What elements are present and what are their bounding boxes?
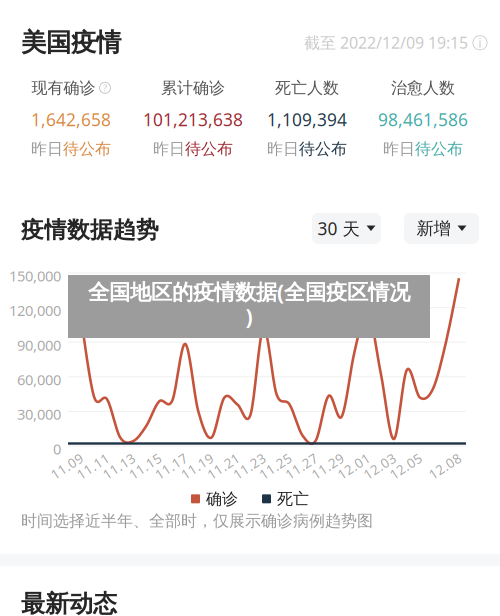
staticText: 待公布 [185, 139, 233, 159]
staticText: 疫情数据趋势 [21, 216, 159, 244]
staticText: 90,000 [17, 335, 61, 355]
staticText: 11.25 [258, 457, 294, 475]
staticText: ? [103, 82, 107, 94]
button[interactable]: 30 天 [312, 213, 381, 244]
staticText: 昨日 [153, 139, 185, 159]
staticText: 11.17 [153, 457, 189, 475]
staticText: 11.23 [231, 457, 267, 475]
staticText: 11.29 [310, 457, 346, 475]
staticText: 12.03 [362, 457, 398, 475]
staticText: 11.11 [75, 457, 111, 475]
staticText: 待公布 [299, 139, 347, 159]
staticText: ) [245, 302, 252, 330]
staticText: 12.01 [336, 457, 372, 475]
staticText: 全国地区的疫情数据(全国疫区情况 [88, 277, 410, 306]
staticText: 待公布 [63, 139, 111, 159]
staticText: 30,000 [17, 404, 61, 424]
staticText: 1,642,658 [31, 108, 111, 131]
staticText: 新增 [416, 218, 450, 239]
staticText: 待公布 [415, 139, 463, 159]
staticText: 30 天 [317, 217, 359, 240]
staticText: 昨日 [267, 139, 299, 159]
staticText: 确诊 [206, 489, 238, 509]
staticText: 死亡人数 [275, 78, 339, 98]
staticText: 11.27 [284, 457, 320, 475]
staticText: 11.19 [179, 457, 215, 475]
staticText: 60,000 [17, 370, 61, 389]
staticText: 治愈人数 [391, 78, 455, 98]
staticText: 120,000 [9, 301, 61, 320]
staticText: 时间选择近半年、全部时，仅展示确诊病例趋势图 [21, 511, 373, 531]
staticText: 现有确诊 [31, 78, 95, 98]
staticText: 截至 2022/12/09 19:15 ⓘ [304, 32, 488, 53]
button[interactable]: 新增 [404, 213, 479, 244]
staticText: 累计确诊 [161, 78, 225, 98]
staticText: 101,213,638 [143, 108, 243, 131]
staticText: 昨日 [31, 139, 63, 159]
staticText: 11.15 [127, 457, 163, 475]
staticText: 11.13 [101, 457, 137, 475]
staticText: 12.08 [427, 457, 463, 475]
staticText: 150,000 [9, 266, 61, 285]
staticText: 0 [53, 439, 61, 458]
staticText: 1,109,394 [267, 108, 347, 131]
staticText: 11.09 [49, 457, 85, 475]
staticText: 12.05 [388, 457, 424, 475]
staticText: 最新动态 [21, 589, 117, 616]
staticText: 11.21 [205, 457, 241, 475]
staticText: 昨日 [383, 139, 415, 159]
staticText: 死亡 [277, 489, 309, 509]
staticText: 98,461,586 [378, 108, 468, 131]
staticText: 美国疫情 [21, 27, 121, 58]
